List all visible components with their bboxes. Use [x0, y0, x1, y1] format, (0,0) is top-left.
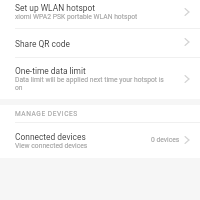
button[interactable]: Set up WLAN hotspot	[0, 0, 200, 28]
other: Share QR code	[182, 36, 194, 48]
staticText: One-time data limit	[15, 66, 86, 76]
staticText: Data limit will be applied next time you…	[15, 76, 167, 92]
button[interactable]: One-time data limit	[0, 58, 200, 99]
staticText: Set up WLAN hotspot	[15, 3, 95, 13]
other: Set up WLAN hotspot	[182, 6, 194, 18]
staticText: xiomi WPA2 PSK portable WLAN hotspot	[15, 13, 138, 21]
button[interactable]: Connected devices	[0, 123, 200, 158]
staticText: MANAGE DEVICES	[15, 110, 78, 118]
staticText: View connected devices	[15, 142, 88, 150]
button[interactable]: Share QR code	[0, 29, 200, 57]
staticText: Connected devices	[15, 132, 86, 142]
staticText: 0 devices	[151, 136, 180, 144]
other: Connected devices	[182, 134, 194, 146]
other: One-time data limit	[182, 73, 194, 85]
staticText: Share QR code	[15, 39, 70, 49]
